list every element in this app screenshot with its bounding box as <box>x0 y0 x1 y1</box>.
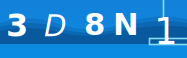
staticText: N <box>113 7 139 42</box>
staticText: 3 <box>6 7 28 44</box>
staticText: 8 <box>84 7 105 42</box>
staticText: 1 <box>154 9 178 53</box>
staticText: D <box>44 9 67 43</box>
